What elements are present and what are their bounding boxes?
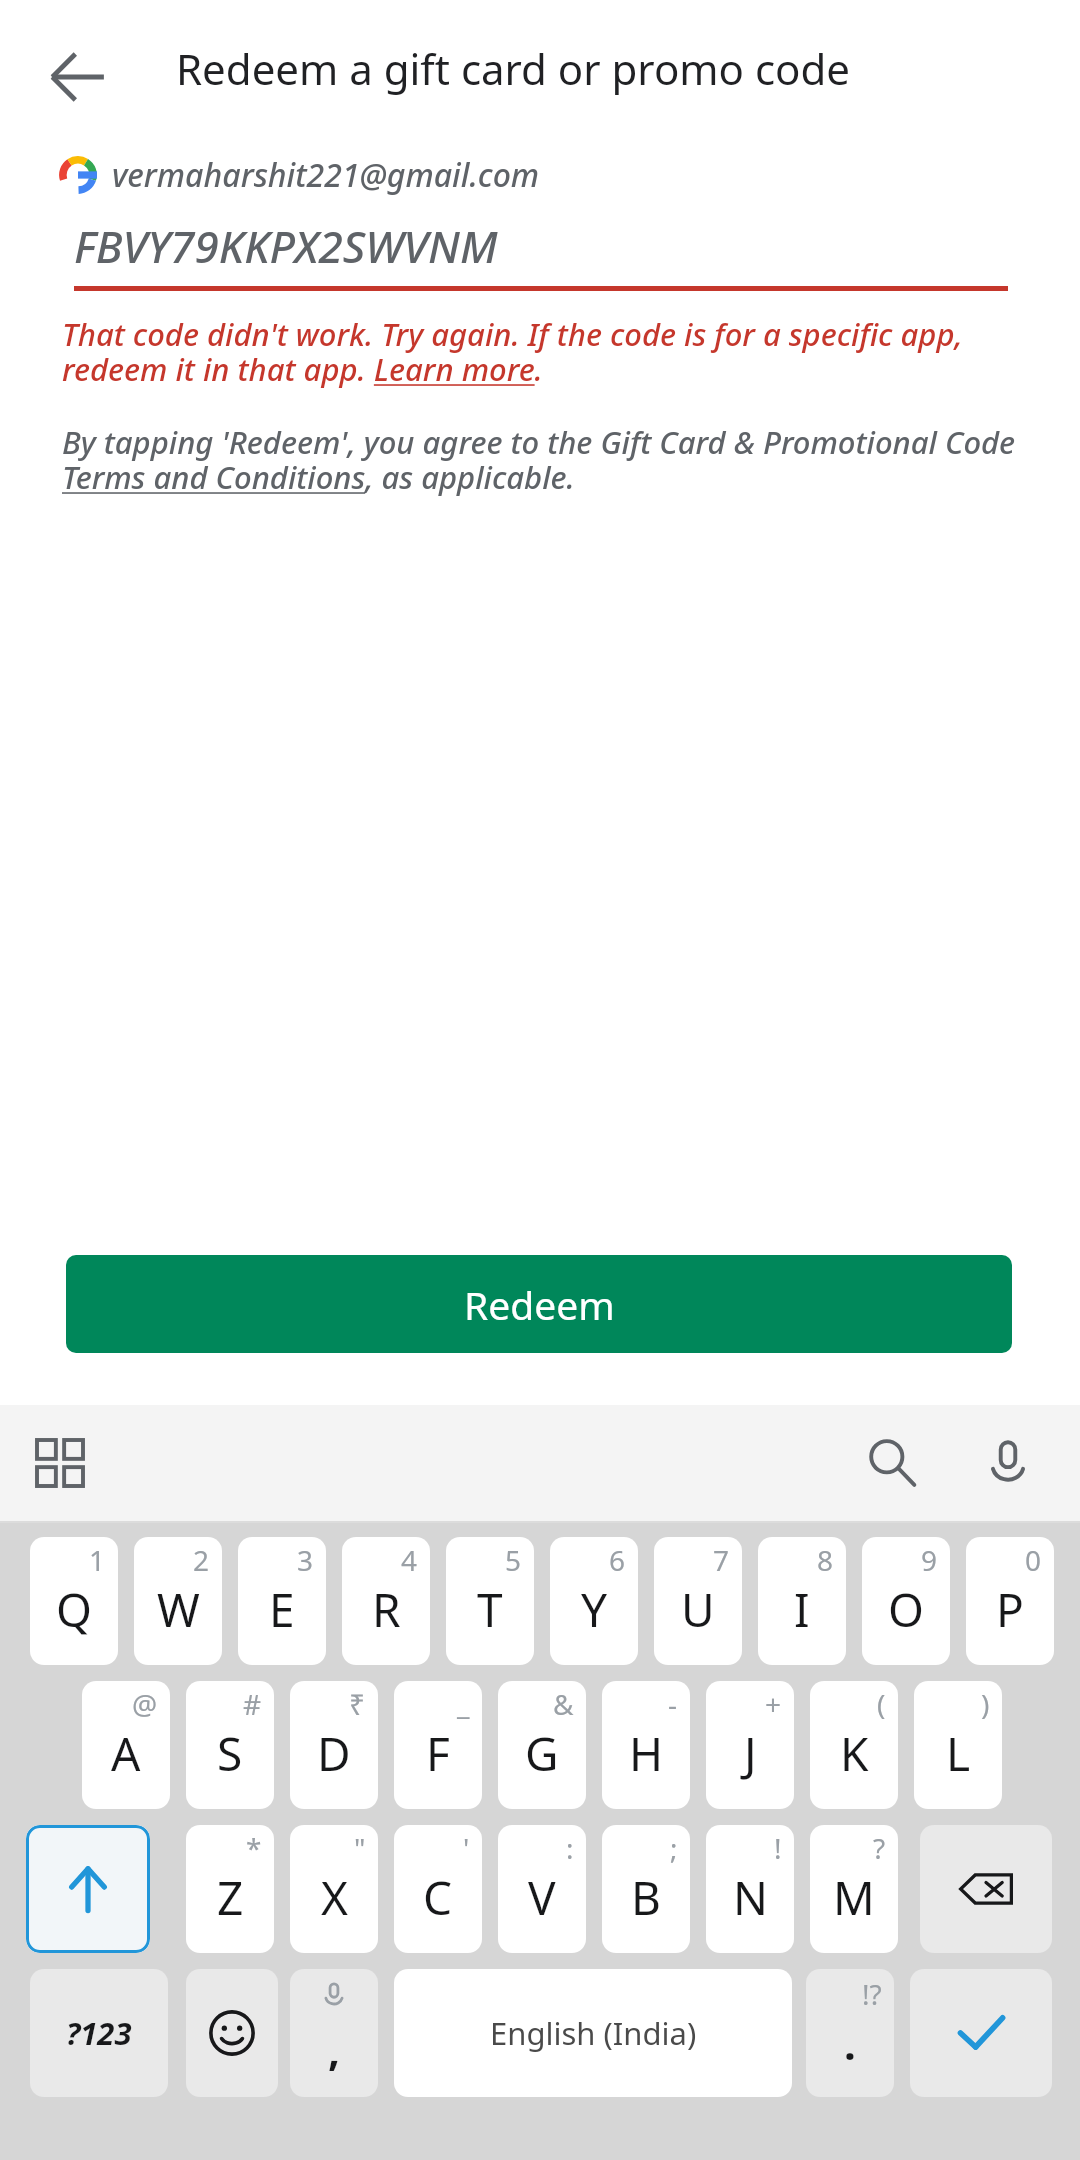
staticText: FBVY79KKPX2SWVNM: [74, 216, 498, 276]
button[interactable]: S: [186, 1681, 274, 1809]
button[interactable]: W: [134, 1537, 222, 1665]
button[interactable]: X: [290, 1825, 378, 1953]
button[interactable]: K: [810, 1681, 898, 1809]
button[interactable]: I: [758, 1537, 846, 1665]
button[interactable]: L: [914, 1681, 1002, 1809]
staticText: _: [457, 1685, 470, 1723]
button[interactable]: P: [966, 1537, 1054, 1665]
staticText: :: [566, 1829, 574, 1867]
staticText: !: [774, 1829, 782, 1867]
staticText: @: [132, 1685, 158, 1723]
button[interactable]: Redeem: [66, 1255, 1012, 1353]
button[interactable]: H: [602, 1681, 690, 1809]
staticText: X: [321, 1866, 348, 1929]
button[interactable]: Y: [550, 1537, 638, 1665]
button[interactable]: Comma: [290, 1969, 378, 2097]
staticText: 2: [193, 1541, 210, 1579]
button[interactable]: Space: [394, 1969, 792, 2097]
staticText: By tapping 'Redeem', you agree to the Gi…: [62, 421, 1018, 499]
staticText: Redeem a gift card or promo code: [176, 40, 850, 97]
staticText: Z: [217, 1866, 244, 1929]
staticText: E: [269, 1578, 295, 1641]
staticText: N: [733, 1866, 768, 1929]
button[interactable]: Enter: [910, 1969, 1052, 2097]
staticText: -: [668, 1685, 678, 1723]
staticText: I: [794, 1578, 810, 1641]
button[interactable]: That code didn't work. Try again. If the…: [62, 313, 1014, 391]
staticText: A: [111, 1722, 141, 1785]
staticText: S: [217, 1722, 243, 1785]
staticText: J: [744, 1722, 757, 1785]
staticText: ;: [670, 1829, 678, 1867]
button[interactable]: C: [394, 1825, 482, 1953]
staticText: 4: [401, 1541, 418, 1579]
staticText: V: [528, 1866, 556, 1929]
button[interactable]: B: [602, 1825, 690, 1953]
button[interactable]: N: [706, 1825, 794, 1953]
button[interactable]: E: [238, 1537, 326, 1665]
staticText: !?: [862, 1975, 882, 2013]
staticText: C: [423, 1866, 453, 1929]
button[interactable]: T: [446, 1537, 534, 1665]
staticText: #: [243, 1685, 262, 1723]
staticText: U: [681, 1578, 715, 1641]
button[interactable]: Voice input: [968, 1423, 1048, 1503]
staticText: B: [631, 1866, 661, 1929]
button[interactable]: J: [706, 1681, 794, 1809]
button[interactable]: Back: [32, 32, 122, 122]
staticText: .: [844, 2015, 856, 2072]
button[interactable]: Q: [30, 1537, 118, 1665]
button[interactable]: Z: [186, 1825, 274, 1953]
staticText: H: [629, 1722, 664, 1785]
staticText: 3: [297, 1541, 314, 1579]
button[interactable]: Shift: [26, 1825, 150, 1953]
staticText: D: [317, 1722, 351, 1785]
staticText: 8: [817, 1541, 834, 1579]
button[interactable]: F: [394, 1681, 482, 1809]
staticText: ?123: [66, 2012, 132, 2054]
button[interactable]: FBVY79KKPX2SWVNM: [74, 216, 1008, 291]
button[interactable]: Search: [852, 1423, 932, 1503]
staticText: +: [765, 1685, 782, 1723]
button[interactable]: D: [290, 1681, 378, 1809]
staticText: That code didn't work. Try again. If the…: [62, 313, 1014, 391]
staticText: Redeem: [464, 1278, 615, 1331]
staticText: vermaharshit221@gmail.com: [112, 153, 540, 197]
staticText: G: [525, 1722, 559, 1785]
button[interactable]: A: [82, 1681, 170, 1809]
staticText: Y: [581, 1578, 608, 1641]
staticText: ?: [873, 1829, 886, 1867]
button[interactable]: G: [498, 1681, 586, 1809]
staticText: 1: [89, 1541, 106, 1579]
staticText: ₹: [349, 1685, 366, 1723]
staticText: Q: [56, 1578, 92, 1641]
staticText: T: [477, 1578, 503, 1641]
staticText: ': [463, 1829, 470, 1867]
staticText: ,: [328, 2021, 340, 2078]
button[interactable]: Clipboard: [22, 1425, 98, 1501]
button[interactable]: M: [810, 1825, 898, 1953]
staticText: English (India): [490, 2012, 697, 2054]
staticText: 6: [609, 1541, 626, 1579]
button[interactable]: Symbols: [30, 1969, 168, 2097]
staticText: W: [157, 1578, 200, 1641]
staticText: L: [946, 1722, 971, 1785]
button[interactable]: Emoji: [186, 1969, 278, 2097]
staticText: 5: [505, 1541, 522, 1579]
button[interactable]: V: [498, 1825, 586, 1953]
staticText: F: [426, 1722, 450, 1785]
staticText: (: [877, 1685, 886, 1723]
staticText: M: [833, 1866, 875, 1929]
button[interactable]: U: [654, 1537, 742, 1665]
button[interactable]: Backspace: [920, 1825, 1052, 1953]
staticText: 9: [921, 1541, 938, 1579]
staticText: P: [996, 1578, 1024, 1641]
staticText: *: [246, 1829, 262, 1867]
staticText: 0: [1025, 1541, 1042, 1579]
button[interactable]: Period: [806, 1969, 894, 2097]
staticText: 7: [713, 1541, 730, 1579]
button[interactable]: By tapping 'Redeem', you agree to the Gi…: [62, 421, 1018, 499]
button[interactable]: R: [342, 1537, 430, 1665]
staticText: ): [981, 1685, 990, 1723]
button[interactable]: O: [862, 1537, 950, 1665]
